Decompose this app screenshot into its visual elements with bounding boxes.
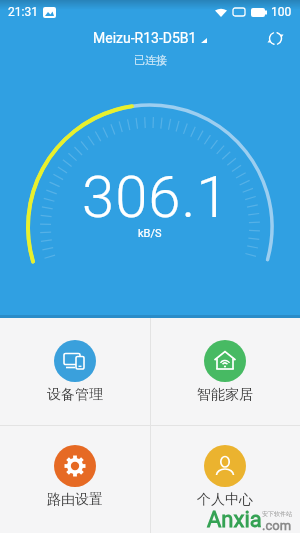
- staticText: 安下软件站: [262, 510, 292, 518]
- staticText: 21:31: [8, 5, 38, 19]
- staticText: 个人中心: [197, 491, 253, 509]
- staticText: Anxia: [207, 507, 262, 533]
- button[interactable]: Meizu-R13-D5B1: [93, 30, 207, 46]
- staticText: 306.1: [82, 163, 230, 231]
- staticText: kB/S: [138, 227, 162, 240]
- staticText: 已连接: [134, 53, 167, 67]
- staticText: 设备管理: [47, 386, 103, 404]
- staticText: .com: [262, 518, 292, 533]
- button[interactable]: 智能家居: [150, 318, 300, 426]
- button[interactable]: 个人中心: [150, 426, 300, 533]
- staticText: Meizu-R13-D5B1: [93, 30, 197, 46]
- button[interactable]: 路由设置: [0, 426, 150, 533]
- staticText: 智能家居: [197, 386, 253, 404]
- button[interactable]: 设备管理: [0, 318, 150, 426]
- staticText: 100: [271, 5, 292, 19]
- staticText: 路由设置: [47, 491, 103, 509]
- button[interactable]: [264, 27, 286, 49]
